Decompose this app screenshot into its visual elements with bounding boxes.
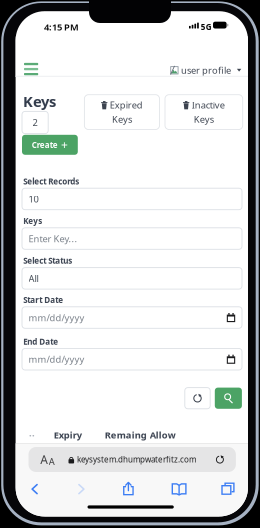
- button[interactable]: user profile: [170, 56, 241, 84]
- button[interactable]: Bookmarks: [158, 476, 200, 502]
- staticText: mm/dd/yyyy: [28, 353, 84, 365]
- button[interactable]: Refresh: [185, 388, 210, 409]
- button[interactable]: Forward: [60, 476, 102, 502]
- button[interactable]: Search: [215, 388, 242, 409]
- staticText: user profile: [181, 64, 231, 76]
- staticText: Keys: [112, 113, 132, 125]
- staticText: keysystem.dhumpwaterfitz.com: [77, 454, 196, 465]
- button[interactable]: Inactive: [165, 95, 243, 129]
- staticText: ..: [29, 427, 35, 439]
- staticText: Inactive: [192, 99, 225, 111]
- staticText: Remaing: [105, 429, 147, 441]
- staticText: mm/dd/yyyy: [28, 311, 84, 324]
- staticText: Expiry: [54, 429, 82, 441]
- staticText: Select Records: [23, 176, 79, 187]
- button[interactable]: Text size options: [33, 447, 61, 472]
- button[interactable]: Share: [107, 475, 149, 501]
- staticText: +: [61, 137, 68, 153]
- staticText: Expired: [110, 99, 143, 111]
- staticText: A: [40, 451, 48, 467]
- staticText: 5G: [201, 21, 212, 32]
- button[interactable]: Back: [14, 476, 56, 502]
- staticText: A: [49, 455, 55, 467]
- button[interactable]: Menu: [16, 54, 54, 84]
- staticText: All: [28, 272, 38, 285]
- staticText: Select Status: [23, 255, 72, 266]
- staticText: Enter Key...: [28, 232, 77, 245]
- button[interactable]: Tabs: [207, 476, 249, 502]
- staticText: Keys: [23, 216, 42, 226]
- button[interactable]: Reload: [209, 447, 231, 472]
- button[interactable]: Expired: [84, 95, 159, 129]
- staticText: Allow: [150, 429, 176, 441]
- staticText: End Date: [23, 336, 58, 347]
- button[interactable]: Create: [22, 135, 78, 155]
- staticText: Keys: [23, 91, 56, 111]
- staticText: Start Date: [23, 295, 63, 305]
- staticText: 10: [28, 193, 38, 205]
- staticText: 2: [33, 116, 38, 129]
- staticText: Keys: [194, 113, 214, 125]
- staticText: 4:15 PM: [44, 21, 79, 33]
- staticText: Create: [32, 139, 58, 150]
